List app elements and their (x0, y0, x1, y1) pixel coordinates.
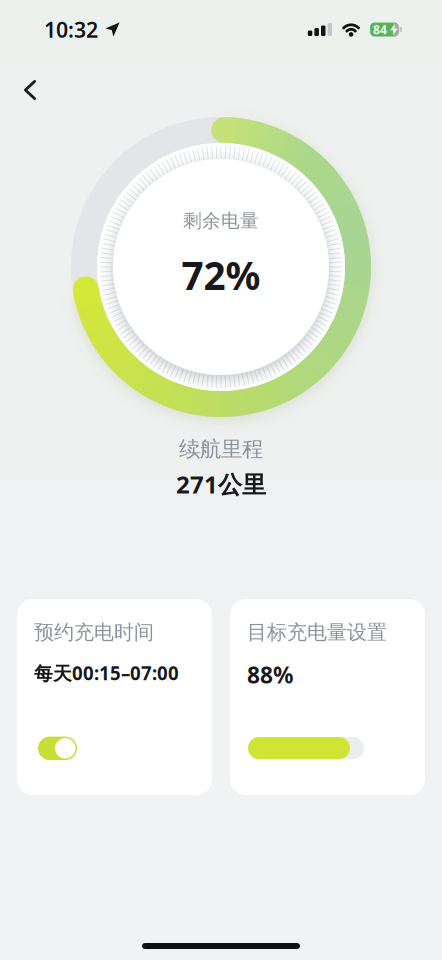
staticText: 剩余电量 (183, 209, 259, 232)
staticText: 每天00:15–07:00 (34, 661, 179, 685)
staticText: 88% (247, 660, 293, 690)
staticText: 72% (181, 249, 260, 301)
staticText: 目标充电量设置 (247, 620, 387, 645)
staticText: 预约充电时间 (34, 620, 154, 645)
button[interactable]: 目标充电量滑块 (248, 737, 364, 759)
staticText: 续航里程 (179, 436, 263, 462)
button[interactable]: 预约充电开关 (38, 737, 77, 760)
button[interactable]: 返回 (0, 68, 36, 112)
staticText: 84 (373, 21, 387, 37)
staticText: 271公里 (176, 468, 266, 500)
staticText: 10:32 (44, 15, 98, 44)
